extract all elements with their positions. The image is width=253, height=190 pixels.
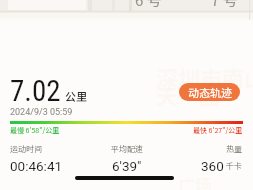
staticText: 00:46:41 <box>10 158 63 174</box>
staticText: 平均配速 <box>111 143 143 155</box>
staticText: 6 号 <box>135 0 162 9</box>
staticText: 7 号 <box>211 0 238 9</box>
staticText: 公里 <box>65 88 87 104</box>
staticText: 7.02 <box>10 74 61 108</box>
staticText: 热量 <box>226 143 242 155</box>
staticText: 运动时间 <box>10 143 42 155</box>
staticText: 千卡 <box>226 160 242 172</box>
staticText: 最慢 6'58"/公里 <box>10 125 60 135</box>
staticText: 6'39" <box>112 158 142 174</box>
staticText: 天 园 <box>156 79 220 111</box>
button[interactable]: 动态轨迹 <box>179 83 240 101</box>
staticText: 2024/9/3 05:59 <box>10 107 73 118</box>
staticText: 最快 6'27"/公里 <box>193 125 243 135</box>
staticText: 深圳市南山 <box>156 61 253 93</box>
staticText: 360 <box>201 158 224 174</box>
staticText: 动态轨迹 <box>188 84 232 100</box>
